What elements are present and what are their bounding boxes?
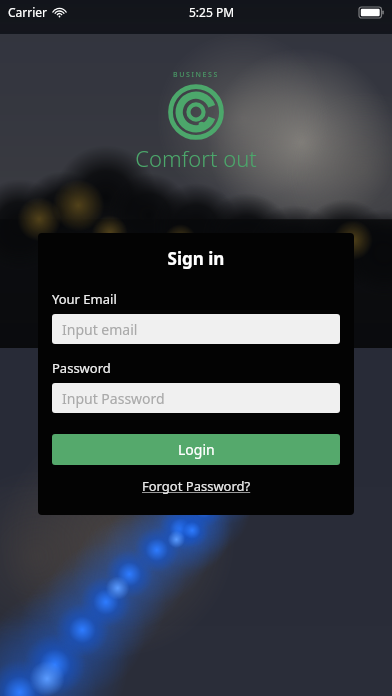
staticText: Forgot Password? [142, 477, 251, 495]
staticText: 5:25 PM [189, 4, 235, 20]
staticText: Login [178, 440, 215, 459]
staticText: Input email [62, 320, 138, 339]
staticText: Carrier [8, 4, 48, 20]
button[interactable]: Forgot Password? [52, 473, 340, 499]
staticText: BUSINESS [173, 70, 219, 80]
button[interactable]: Input Password [52, 383, 340, 413]
staticText: Your Email [52, 290, 117, 308]
button[interactable]: Input email [52, 314, 340, 344]
staticText: Sign in [52, 247, 340, 270]
staticText: Comfort out [135, 143, 257, 173]
staticText: Password [52, 359, 111, 377]
staticText: Input Password [62, 389, 165, 408]
button[interactable]: Login [52, 434, 340, 465]
